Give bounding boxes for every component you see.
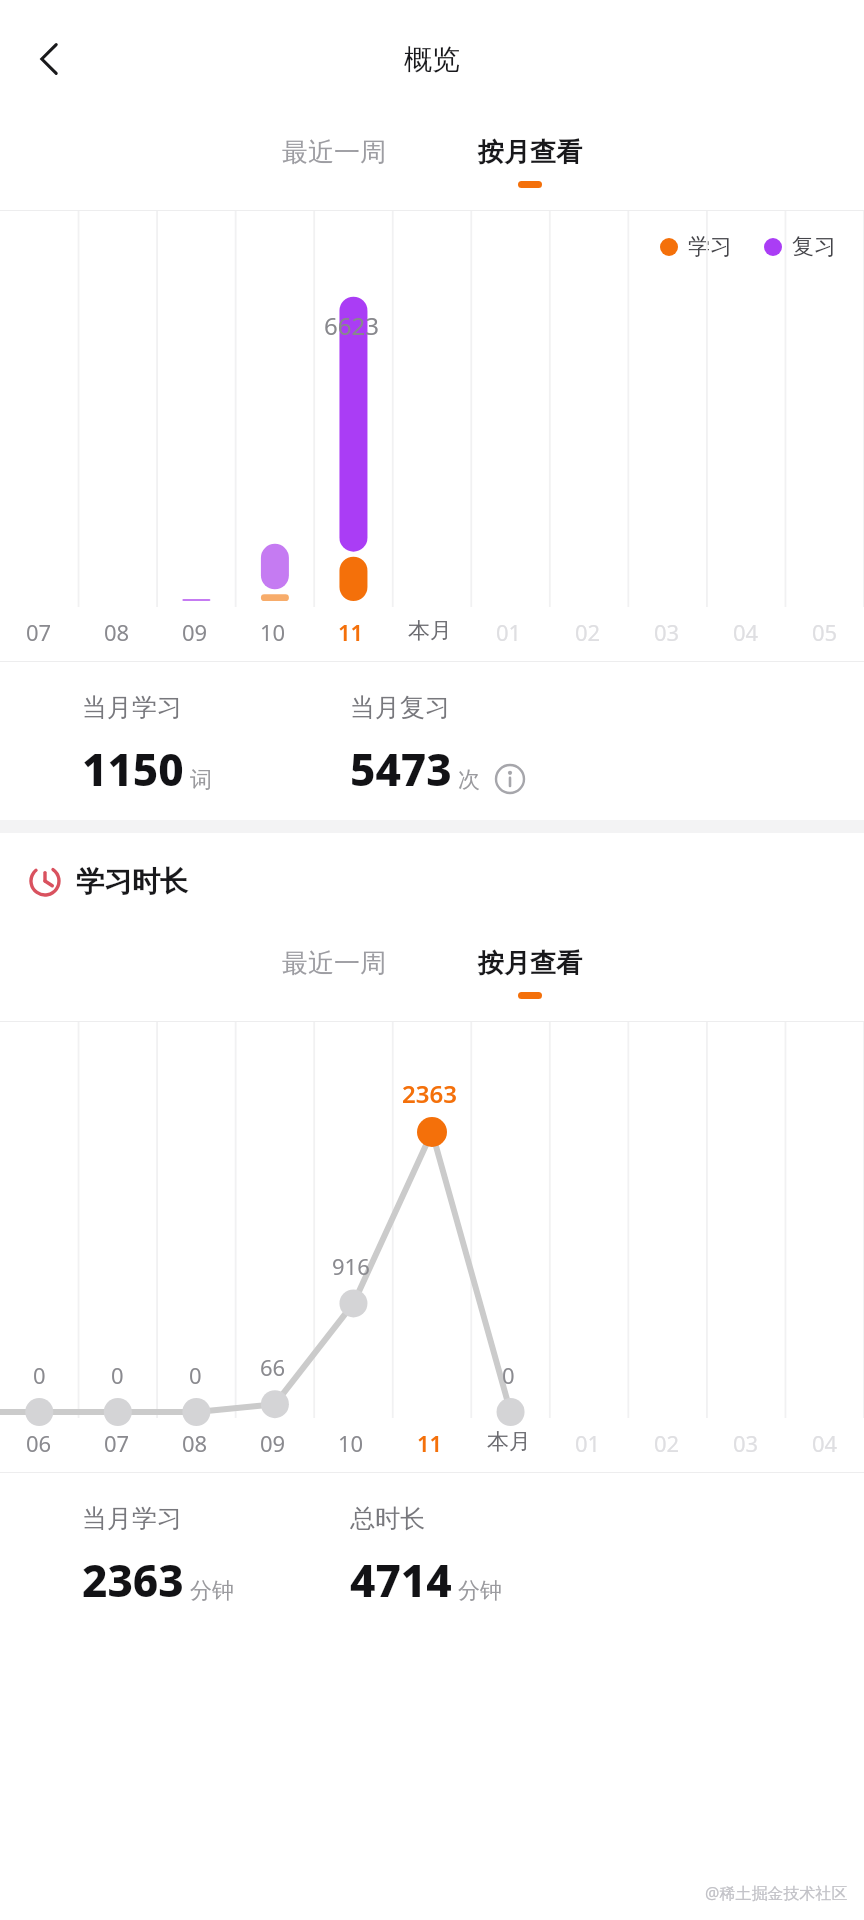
staticText: 01: [496, 617, 522, 647]
staticText: 09: [260, 1428, 286, 1458]
staticText: 分钟: [190, 1577, 234, 1605]
staticText: 次: [458, 766, 480, 794]
staticText: 11: [417, 1428, 443, 1458]
button[interactable]: Info: [494, 763, 526, 795]
staticText: 学习: [688, 233, 732, 261]
staticText: 按月查看: [478, 947, 582, 980]
button[interactable]: 总时长: [350, 1503, 502, 1610]
staticText: 05: [812, 617, 838, 647]
staticText: 08: [182, 1428, 208, 1458]
staticText: 66: [260, 1352, 286, 1382]
staticText: 2363: [402, 1077, 457, 1110]
staticText: 07: [104, 1428, 130, 1458]
staticText: 按月查看: [478, 136, 582, 169]
staticText: 分钟: [458, 1577, 502, 1605]
button[interactable]: 最近一周: [256, 941, 412, 986]
button[interactable]: 当月学习: [82, 692, 350, 799]
button[interactable]: Back: [20, 30, 78, 88]
staticText: 学习时长: [76, 864, 188, 899]
staticText: 最近一周: [282, 947, 386, 980]
staticText: 概览: [404, 42, 460, 77]
staticText: 09: [182, 617, 208, 647]
staticText: 02: [654, 1428, 680, 1458]
staticText: 5473: [350, 739, 452, 799]
staticText: 08: [104, 617, 130, 647]
staticText: 04: [733, 617, 759, 647]
staticText: 6623: [324, 309, 379, 342]
button[interactable]: 当月复习: [350, 692, 526, 799]
button[interactable]: 按月查看: [452, 130, 608, 194]
staticText: 当月复习: [350, 692, 450, 723]
staticText: 4714: [350, 1550, 452, 1610]
staticText: 当月学习: [82, 1503, 182, 1534]
staticText: 本月: [408, 617, 452, 645]
staticText: 当月学习: [82, 692, 182, 723]
staticText: 10: [338, 1428, 364, 1458]
staticText: 0: [189, 1360, 202, 1390]
staticText: 1150: [82, 739, 184, 799]
staticText: 07: [26, 617, 52, 647]
staticText: 0: [502, 1360, 515, 1390]
staticText: 03: [654, 617, 680, 647]
staticText: 916: [332, 1251, 370, 1281]
staticText: 总时长: [350, 1503, 425, 1534]
button[interactable]: 按月查看: [452, 941, 608, 1005]
staticText: 2363: [82, 1550, 184, 1610]
staticText: 06: [26, 1428, 52, 1458]
staticText: 03: [733, 1428, 759, 1458]
staticText: 11: [338, 617, 364, 647]
staticText: 02: [575, 617, 601, 647]
staticText: 本月: [487, 1428, 531, 1456]
staticText: 01: [575, 1428, 601, 1458]
staticText: @稀土掘金技术社区: [705, 1882, 848, 1904]
button[interactable]: 最近一周: [256, 130, 412, 175]
staticText: 0: [33, 1360, 46, 1390]
staticText: 复习: [792, 233, 836, 261]
staticText: 04: [812, 1428, 838, 1458]
staticText: 10: [260, 617, 286, 647]
staticText: 0: [111, 1360, 124, 1390]
staticText: 词: [190, 766, 212, 794]
staticText: 最近一周: [282, 136, 386, 169]
button[interactable]: 当月学习: [82, 1503, 350, 1610]
